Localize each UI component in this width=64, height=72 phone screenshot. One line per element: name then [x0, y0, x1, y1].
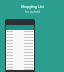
button[interactable] [6, 57, 34, 60]
staticText: Shopping List [21, 4, 44, 9]
button[interactable] [6, 66, 34, 69]
button[interactable] [6, 63, 34, 66]
button[interactable] [6, 54, 34, 57]
button[interactable] [6, 30, 34, 33]
button[interactable] [6, 45, 34, 48]
button[interactable] [6, 69, 34, 70]
button[interactable] [6, 33, 34, 36]
button[interactable] [6, 60, 34, 63]
staticText: for android [25, 10, 40, 14]
button[interactable] [6, 36, 34, 39]
button[interactable] [6, 51, 34, 54]
button[interactable] [6, 48, 34, 51]
button[interactable] [6, 42, 34, 45]
button[interactable] [6, 39, 34, 42]
